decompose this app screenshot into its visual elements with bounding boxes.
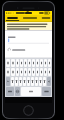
button[interactable]: Key [16,68,19,76]
button[interactable]: Key [40,68,43,76]
button[interactable]: Key [20,59,23,67]
button[interactable]: Ещё [40,15,52,21]
button[interactable]: Key [6,59,10,67]
button[interactable]: Key [11,77,14,86]
button[interactable]: Return [42,87,51,96]
button[interactable]: Home [23,105,34,116]
button[interactable]: Key [6,68,10,76]
button[interactable]: Key [20,68,23,76]
button[interactable]: Space [21,87,41,96]
button[interactable]: Attach file [5,51,52,58]
button[interactable]: Language [15,87,20,96]
button[interactable]: Key [19,77,22,86]
button[interactable]: Key [28,68,31,76]
button[interactable]: Key [15,77,18,86]
button[interactable]: Key [44,68,47,76]
button[interactable]: Key [16,59,19,67]
button[interactable]: Key [32,59,35,67]
button[interactable]: Key [31,77,34,86]
button[interactable]: Key [6,77,10,86]
button[interactable]: 123 [6,87,14,96]
button[interactable]: Key [48,68,51,76]
button[interactable]: Key [40,59,43,67]
button[interactable]: Key [48,59,51,67]
button[interactable]: Рекомендации [20,15,40,21]
button[interactable]: Key [35,77,38,86]
button[interactable]: Сообщения [5,15,20,21]
button[interactable]: Key [36,59,39,67]
button[interactable]: Key [24,59,27,67]
button[interactable]: Key [28,59,31,67]
button[interactable]: Key [11,59,15,67]
button[interactable]: Key [47,77,51,86]
button[interactable]: Key [24,68,27,76]
button[interactable]: Key [39,77,42,86]
button[interactable]: Key [44,59,47,67]
button[interactable]: Key [36,68,39,76]
button[interactable]: Key [32,68,35,76]
button[interactable]: Key [11,68,15,76]
button[interactable]: Key [27,77,30,86]
button[interactable]: Key [23,77,26,86]
button[interactable]: Key [43,77,46,86]
